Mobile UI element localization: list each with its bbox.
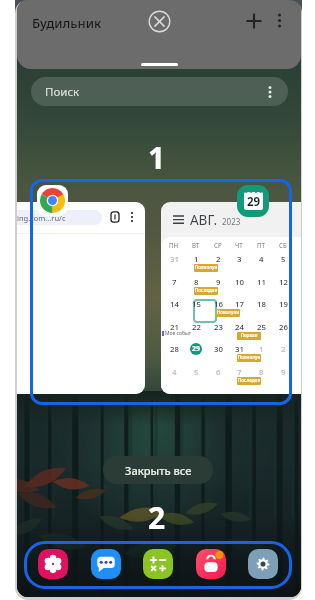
button[interactable]: Calculator — [143, 549, 173, 579]
staticText: АВГ. — [190, 211, 218, 229]
staticText: 10 — [235, 277, 244, 288]
staticText: Полнолуние — [237, 354, 261, 362]
staticText: 26 — [279, 322, 288, 333]
staticText: СБ — [279, 241, 287, 249]
staticText: 2023 — [222, 216, 241, 227]
staticText: 5 — [194, 367, 199, 378]
staticText: 15 — [192, 299, 201, 310]
staticText: 22 — [192, 322, 201, 333]
staticText: 1 — [148, 137, 166, 178]
staticText: 1 — [259, 344, 264, 355]
staticText: 18 — [257, 299, 266, 310]
staticText: СР — [214, 241, 222, 249]
button[interactable]: АВГ. — [161, 202, 301, 394]
staticText: 7 — [172, 277, 177, 288]
staticText: 28 — [170, 344, 179, 355]
staticText: 11 — [257, 277, 266, 288]
staticText: 5 — [281, 254, 286, 265]
staticText: 8 — [259, 367, 264, 378]
button[interactable]: Add alarm — [242, 9, 266, 33]
staticText: 25 — [257, 322, 266, 333]
staticText: 9 — [216, 277, 221, 288]
staticText: Мое событ — [165, 330, 192, 337]
button[interactable]: Gallery — [38, 549, 68, 579]
staticText: ЧТ — [235, 241, 243, 249]
staticText: ПН — [169, 241, 179, 249]
staticText: 17 — [235, 299, 244, 310]
staticText: Закрыть все — [125, 463, 192, 478]
button[interactable]: Close app — [148, 10, 171, 33]
staticText: Последняя — [237, 377, 261, 385]
staticText: Полнолуние — [194, 264, 218, 272]
staticText: 7 — [237, 367, 242, 378]
staticText: Будильник — [32, 14, 102, 32]
staticText: 6 — [216, 367, 221, 378]
button[interactable]: Settings — [248, 549, 278, 579]
staticText: 2 — [216, 254, 221, 265]
staticText: 12 — [279, 277, 288, 288]
button[interactable]: Shopping — [196, 549, 226, 579]
staticText: 31 — [170, 254, 179, 265]
staticText: 19 — [279, 299, 288, 310]
staticText: 30 — [214, 344, 223, 355]
button[interactable]: ing.com...ru/c — [17, 202, 145, 394]
staticText: ВТ — [192, 241, 200, 249]
staticText: ing.com...ru/c — [17, 213, 66, 223]
staticText: 16 — [214, 299, 223, 310]
staticText: 9 — [281, 367, 286, 378]
staticText: 23 — [214, 322, 223, 333]
staticText: 31 — [235, 344, 244, 355]
staticText: 1 — [194, 254, 199, 265]
staticText: 4 — [259, 254, 264, 265]
staticText: 3 — [237, 254, 242, 265]
staticText: 2 — [281, 344, 286, 355]
staticText: 4 — [172, 367, 177, 378]
button[interactable]: Messages — [91, 549, 121, 579]
staticText: 14 — [170, 299, 179, 310]
button[interactable]: Закрыть все — [103, 456, 213, 484]
staticText: 29 — [247, 194, 261, 210]
staticText: ПТ — [257, 241, 265, 249]
staticText: Первая чет — [237, 332, 261, 340]
staticText: Поиск — [45, 84, 80, 100]
button[interactable]: Поиск — [31, 77, 288, 106]
staticText: 24 — [235, 322, 244, 333]
staticText: 2 — [148, 497, 166, 538]
staticText: 8 — [194, 277, 199, 288]
staticText: Новолуние — [216, 309, 240, 317]
staticText: 21 — [170, 322, 179, 333]
staticText: Последняя — [194, 287, 218, 295]
staticText: 29 — [192, 344, 201, 354]
button[interactable]: More options — [268, 9, 291, 32]
